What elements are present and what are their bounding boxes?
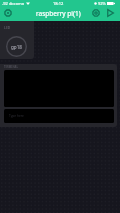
button[interactable]: LED bbox=[0, 21, 34, 59]
staticText: gp18 bbox=[11, 44, 22, 50]
button[interactable]: Open device bbox=[0, 6, 16, 20]
staticText: 18:12 bbox=[53, 1, 64, 6]
button[interactable]: Settings bbox=[89, 6, 103, 20]
staticText: Type here bbox=[9, 114, 24, 118]
staticText: TERMINAL bbox=[4, 65, 18, 69]
staticText: LED bbox=[4, 25, 11, 30]
staticText: 92% bbox=[98, 1, 106, 6]
staticText: raspberry pi(1) bbox=[36, 9, 81, 18]
staticText: -92 docomo bbox=[2, 1, 25, 6]
button[interactable]: Run bbox=[103, 6, 117, 20]
